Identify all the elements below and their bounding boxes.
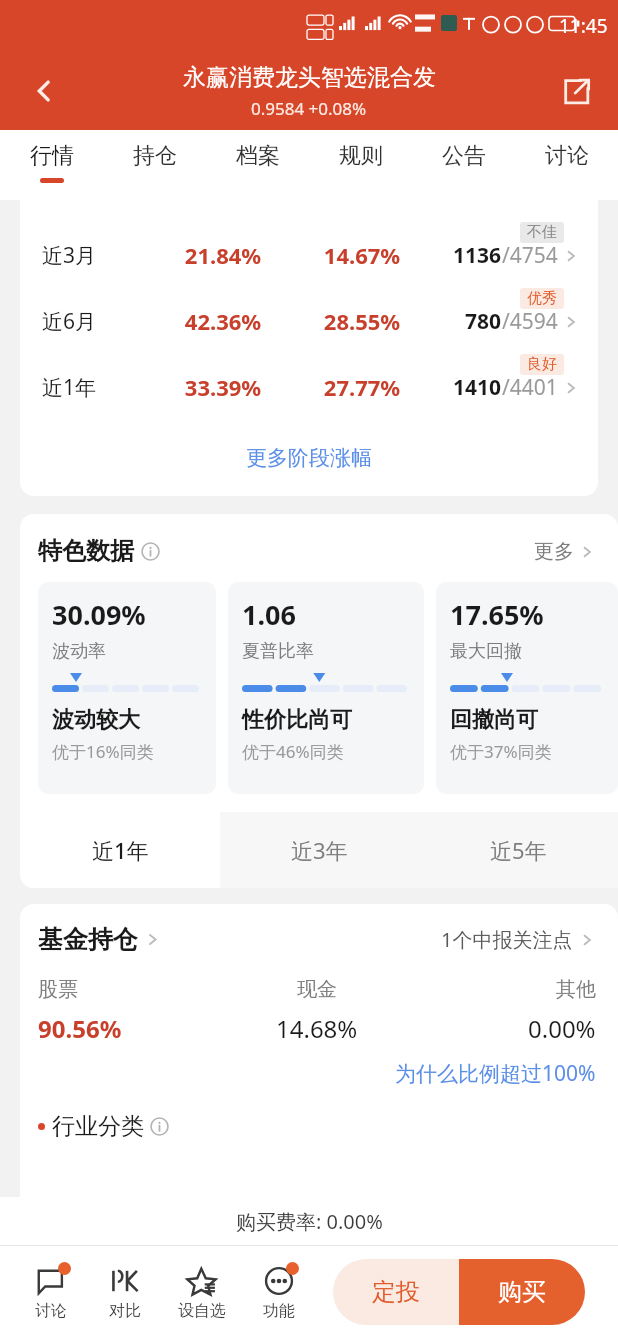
staticText: 永赢消费龙头智选混合发 [183,63,436,92]
staticText: /4401 [502,373,558,402]
staticText: 波动较大 [52,706,140,734]
staticText: 30.09% [52,596,146,633]
button[interactable]: 定投 [333,1259,459,1325]
button[interactable]: 30.09% [38,582,216,794]
staticText: /4594 [502,307,558,336]
staticText: 更多阶段涨幅 [246,445,372,471]
staticText: 0.00% [528,1012,596,1045]
button[interactable]: 近6月 [20,288,598,354]
staticText: 购买 [498,1277,546,1307]
staticText: 不佳 [527,223,557,242]
button[interactable]: 设自选 [162,1264,242,1321]
staticText: 21.84% [148,240,298,270]
staticText: 优于37%同类 [450,740,552,763]
staticText: 定投 [372,1277,420,1307]
button[interactable]: 近3年 [220,812,419,888]
button[interactable]: 行业分类 [38,1112,169,1141]
staticText: 17.65% [450,596,544,633]
button[interactable]: 近5年 [419,812,618,888]
button[interactable]: 公告 [412,130,515,200]
button[interactable]: Back [22,69,66,113]
staticText: 近6月 [42,307,148,336]
staticText: 公告 [442,142,486,170]
staticText: 回撤尚可 [450,706,538,734]
staticText: 11:45 [559,13,608,39]
staticText: 优于46%同类 [242,740,344,763]
button[interactable]: 购买 [459,1259,585,1325]
staticText: 现金 [297,977,337,1002]
staticText: 优于16%同类 [52,740,154,763]
button[interactable]: 基金持仓 [38,924,162,955]
staticText: 1136 [453,241,502,270]
staticText: 对比 [109,1301,141,1321]
staticText: 档案 [236,142,280,170]
button[interactable]: 讨论 [14,1264,88,1321]
staticText: 780 [465,307,502,336]
staticText: 行情 [30,142,74,170]
staticText: 购买费率: 0.00% [236,1208,383,1235]
staticText: 1个中报关注点 [441,926,573,953]
button[interactable]: 行情 [0,130,103,200]
staticText: 波动率 [52,640,106,663]
button[interactable]: 更多 [534,539,596,564]
button[interactable]: 规则 [309,130,412,200]
staticText: 性价比尚可 [242,706,352,734]
button[interactable]: 更多阶段涨幅 [20,420,598,496]
button[interactable]: 17.65% [436,582,618,794]
staticText: 33.39% [148,372,298,402]
staticText: 股票 [38,977,78,1002]
staticText: 夏普比率 [242,640,314,663]
staticText: 近1年 [92,835,149,865]
staticText: 1.06 [242,596,296,633]
button[interactable]: Share [554,69,598,113]
button[interactable]: 近1年 [20,354,598,420]
staticText: 近5年 [490,835,547,865]
staticText: 设自选 [178,1301,226,1321]
staticText: 90.56% [38,1012,122,1045]
staticText: 良好 [527,355,557,374]
staticText: 近1年 [42,373,148,402]
staticText: 14.68% [276,1012,358,1045]
staticText: 14.67% [298,240,426,270]
staticText: 行业分类 [52,1112,144,1141]
staticText: 讨论 [545,142,589,170]
button[interactable]: 功能 [242,1264,316,1321]
staticText: 讨论 [35,1301,67,1321]
staticText: 42.36% [148,306,298,336]
staticText: 持仓 [133,142,177,170]
staticText: 特色数据 [38,536,134,566]
staticText: 优秀 [527,289,557,308]
staticText: 0.9584 +0.08% [251,97,367,120]
staticText: 1410 [453,373,502,402]
button[interactable]: 持仓 [103,130,206,200]
staticText: 功能 [263,1301,295,1321]
staticText: 27.77% [298,372,426,402]
staticText: 最大回撤 [450,640,522,663]
staticText: 规则 [339,142,383,170]
button[interactable]: 近3月 [20,222,598,288]
button[interactable]: 1个中报关注点 [441,926,596,953]
staticText: 28.55% [298,306,426,336]
staticText: 近3年 [291,835,348,865]
staticText: 其他 [556,977,596,1002]
button[interactable]: 档案 [206,130,309,200]
button[interactable]: 对比 [88,1264,162,1321]
button[interactable]: 1.06 [228,582,424,794]
button[interactable]: 近1年 [20,812,220,888]
staticText: /4754 [502,241,558,270]
staticText: 基金持仓 [38,924,138,955]
staticText: 近3月 [42,241,148,270]
button[interactable]: 讨论 [515,130,618,200]
button[interactable]: 为什么比例超过100% [395,1059,596,1088]
staticText: 更多 [534,539,574,564]
